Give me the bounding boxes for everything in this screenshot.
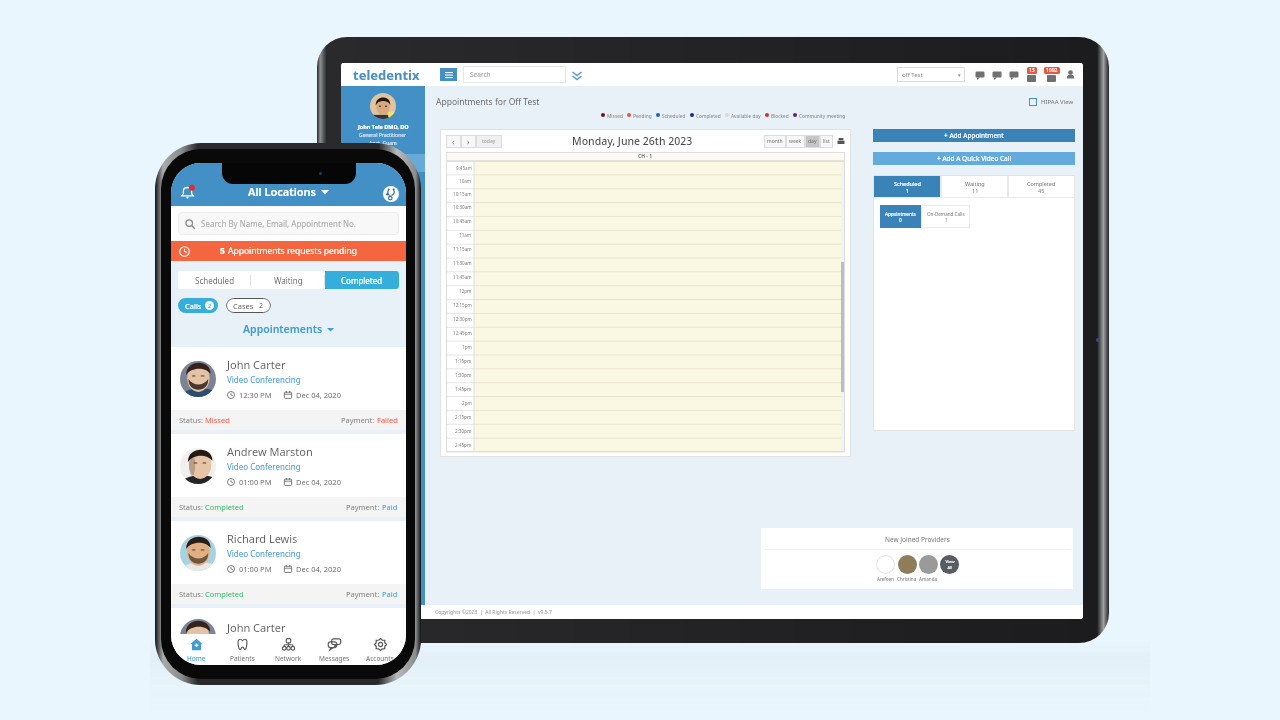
staticText: 1pm — [462, 344, 472, 350]
button[interactable]: Profile — [383, 186, 399, 202]
staticText: Dec 04, 2020 — [296, 477, 341, 487]
button[interactable]: Notes — [974, 69, 985, 80]
button[interactable]: Accounts — [357, 635, 403, 665]
button[interactable]: Account — [1066, 70, 1075, 79]
button[interactable]: Notifications — [179, 184, 196, 201]
staticText: Search By Name, Email, Appointment No. — [201, 218, 356, 229]
button[interactable]: John Carter — [171, 347, 406, 434]
staticText: Video Conferencing — [227, 461, 301, 472]
staticText: 1:45pm — [455, 386, 472, 392]
staticText: Home — [187, 654, 206, 663]
staticText: Search — [470, 70, 491, 79]
button[interactable]: View All — [940, 555, 959, 574]
staticText: HIPAA View — [1041, 98, 1074, 106]
staticText: 5 — [220, 245, 228, 257]
button[interactable]: Arefeen — [876, 555, 895, 574]
staticText: Paid — [382, 589, 398, 599]
staticText: On-Demand Calls — [927, 211, 965, 217]
staticText: 10:45am — [453, 218, 472, 224]
button[interactable]: Menu — [440, 68, 457, 81]
staticText: Arefeen — [877, 576, 894, 582]
button[interactable]: + Add Appointment — [873, 129, 1075, 142]
staticText: Network — [275, 654, 302, 663]
button[interactable]: Home — [174, 635, 219, 665]
staticText: Video Conferencing — [227, 548, 301, 559]
button[interactable]: Next — [461, 135, 476, 148]
staticText: Completed — [696, 113, 721, 120]
staticText: list — [823, 138, 830, 145]
button[interactable]: Previous — [446, 135, 461, 148]
button[interactable]: Chat — [1008, 69, 1019, 80]
staticText: 1:15pm — [455, 358, 472, 364]
button[interactable]: Appointements — [171, 322, 406, 336]
button[interactable]: Calls — [185, 298, 214, 313]
staticText: Richard Lewis — [227, 531, 298, 546]
staticText: 12:45pm — [453, 330, 472, 336]
staticText: ▾ — [958, 72, 961, 78]
button[interactable]: Richard Lewis — [171, 521, 406, 608]
staticText: Scheduled — [195, 275, 235, 286]
button[interactable]: Waiting — [251, 271, 325, 289]
staticText: Completed — [205, 502, 244, 512]
staticText: teledentix — [353, 66, 420, 84]
button[interactable]: Appointments — [880, 205, 921, 228]
button[interactable]: Scheduled — [178, 271, 251, 289]
staticText: 2 — [259, 301, 264, 311]
button[interactable]: Search By Name, Email, Appointment No. — [178, 212, 399, 235]
button[interactable]: day — [808, 135, 817, 148]
staticText: 2pm — [462, 400, 472, 406]
staticText: 9:45am — [456, 165, 472, 171]
button[interactable]: month — [767, 135, 783, 148]
staticText: John Carter — [227, 357, 286, 372]
staticText: Amanda — [919, 576, 938, 582]
button[interactable]: Amanda — [919, 555, 938, 574]
staticText: Failed — [377, 415, 398, 425]
staticText: Status: — [179, 502, 205, 512]
button[interactable] — [1029, 98, 1037, 106]
staticText: General Practitioner — [359, 132, 407, 139]
staticText: 0 — [899, 217, 902, 223]
staticText: Completed — [341, 275, 383, 286]
staticText: Waiting — [274, 275, 303, 286]
button[interactable]: Print — [837, 138, 845, 146]
button[interactable]: Cases — [233, 298, 264, 313]
button[interactable]: list — [823, 135, 830, 148]
staticText: 11 — [972, 187, 979, 194]
staticText: Calls — [185, 301, 202, 311]
button[interactable]: On-Demand Calls — [921, 205, 970, 228]
button[interactable]: Completed — [325, 271, 399, 289]
button[interactable]: John Carter avatar — [171, 608, 406, 635]
button[interactable]: today — [476, 135, 502, 148]
button[interactable]: Alerts — [1025, 67, 1038, 83]
staticText: 10am — [459, 178, 472, 184]
button[interactable]: week — [789, 135, 802, 148]
staticText: John Carter — [227, 620, 286, 635]
button[interactable]: Andrew Marston — [171, 434, 406, 521]
staticText: › — [467, 136, 470, 147]
staticText: View All — [945, 559, 955, 571]
staticText: Available day — [731, 113, 761, 120]
button[interactable]: Christina — [898, 555, 917, 574]
staticText: Video Conferencing — [227, 374, 301, 385]
staticText: 1092 — [1046, 67, 1058, 74]
staticText: + Add Appointment — [944, 131, 1004, 140]
button[interactable]: Messages — [311, 635, 357, 665]
button[interactable]: Waiting — [941, 175, 1008, 198]
staticText: + Add A Quick Video Call — [937, 154, 1012, 163]
staticText: 12:30pm — [453, 316, 472, 322]
staticText: 2:45pm — [455, 442, 472, 448]
button[interactable]: Patients — [219, 635, 265, 665]
staticText: 10:30am — [453, 204, 472, 210]
button[interactable]: Completed — [1008, 175, 1075, 198]
staticText: Status: — [179, 589, 205, 599]
button[interactable]: All Locations — [248, 184, 329, 199]
staticText: 2 — [208, 302, 212, 310]
button[interactable]: Network — [265, 635, 311, 665]
button[interactable]: off Test — [897, 67, 965, 82]
staticText: CH - 1 — [638, 153, 653, 160]
button[interactable]: Mail — [991, 69, 1002, 80]
button[interactable]: Messages — [1043, 67, 1060, 83]
button[interactable]: + Add A Quick Video Call — [873, 152, 1075, 165]
staticText: 1:30pm — [455, 372, 472, 378]
button[interactable]: Scheduled — [873, 175, 941, 198]
